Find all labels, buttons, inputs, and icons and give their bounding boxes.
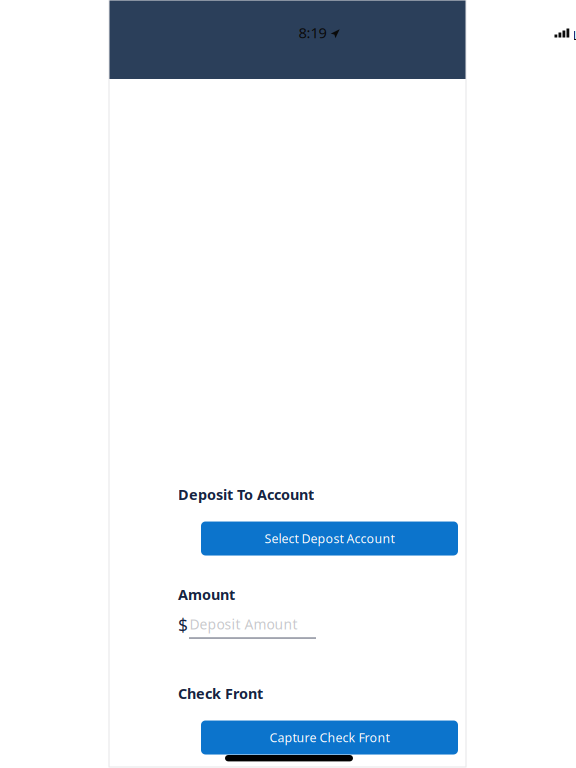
button[interactable]: Menu (229, 76, 260, 105)
staticText: Select Depost Account (264, 530, 394, 547)
button[interactable]: Capture Check Front (201, 720, 458, 754)
staticText: Capture Check Front (269, 729, 389, 746)
button[interactable]: Select Depost Account (201, 521, 458, 555)
staticText: Check Front (178, 683, 263, 703)
staticText: Deposit To Account (178, 484, 314, 504)
staticText: Amount (178, 584, 235, 604)
staticText: Deposit a Check (271, 76, 416, 103)
staticText: 8:19 (298, 22, 326, 42)
button[interactable]: Deposit Amount (178, 613, 328, 641)
staticText: $ (178, 613, 188, 636)
staticText: Deposit Amount (189, 615, 297, 634)
staticText: LTE (572, 26, 576, 44)
